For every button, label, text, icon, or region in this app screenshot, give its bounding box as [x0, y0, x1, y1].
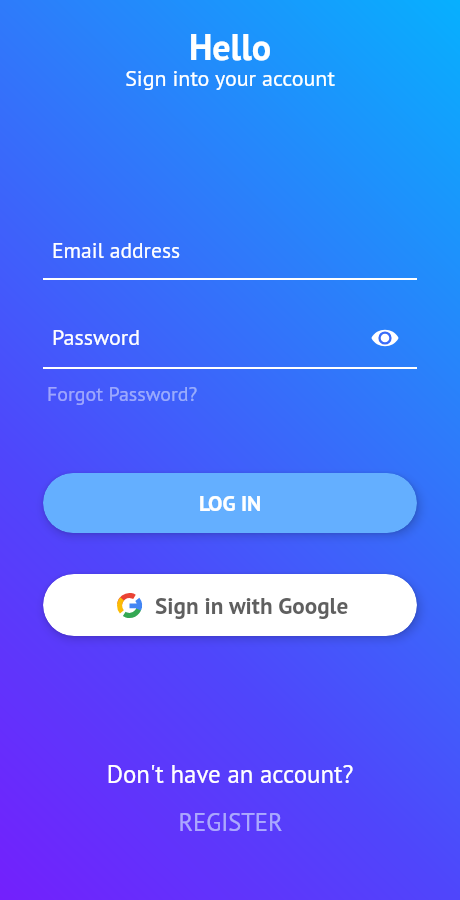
staticText: Hello	[0, 23, 460, 70]
staticText: Email address	[52, 236, 181, 264]
button[interactable]: Show password	[370, 323, 400, 353]
staticText: Don't have an account?	[0, 758, 460, 790]
staticText: LOG IN	[199, 489, 262, 517]
staticText: Password	[52, 323, 141, 351]
staticText: Sign into your account	[0, 64, 460, 92]
button[interactable]: Sign in with Google	[43, 574, 417, 636]
button[interactable]: LOG IN	[43, 473, 417, 533]
button[interactable]: REGISTER	[168, 803, 293, 841]
button[interactable]: Forgot Password?	[43, 381, 198, 407]
staticText: Sign in with Google	[155, 590, 349, 620]
